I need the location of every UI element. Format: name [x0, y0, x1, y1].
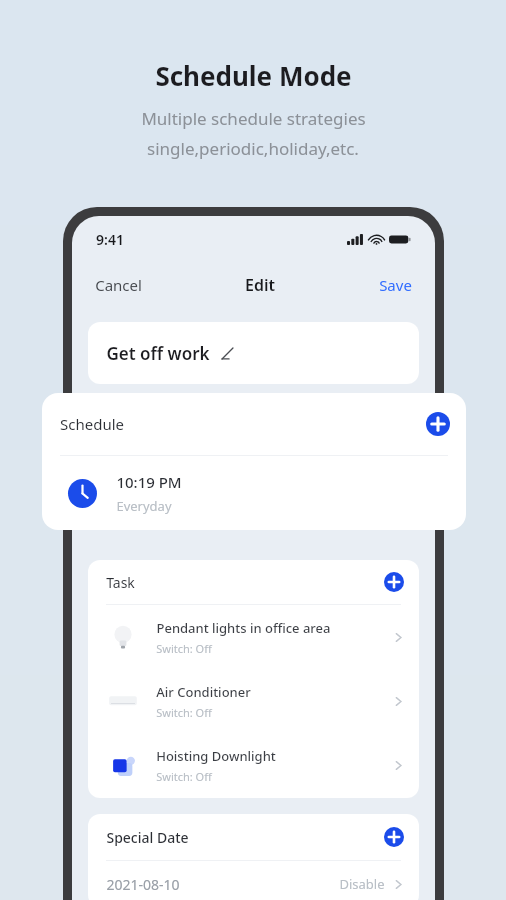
- button[interactable]: Get off work: [88, 322, 419, 384]
- staticText: Get off work: [106, 342, 210, 365]
- button[interactable]: Pendant lights in office area: [88, 605, 419, 669]
- staticText: Disable: [339, 875, 385, 893]
- staticText: 9:41: [96, 230, 124, 249]
- staticText: Multiple schedule strategies: [141, 107, 366, 130]
- staticText: Switch: Off: [156, 769, 212, 784]
- staticText: Hoisting Downlight: [156, 747, 276, 765]
- staticText: single,periodic,holiday,etc.: [147, 137, 359, 160]
- staticText: 2021-08-10: [106, 875, 180, 894]
- button[interactable]: Air Conditioner: [88, 669, 419, 733]
- staticText: Air Conditioner: [156, 683, 251, 701]
- staticText: Schedule: [60, 414, 124, 434]
- button[interactable]: Task: [88, 560, 419, 604]
- staticText: Schedule Mode: [155, 58, 352, 93]
- staticText: Edit: [245, 274, 275, 296]
- button[interactable]: Add: [384, 572, 404, 592]
- staticText: Pendant lights in office area: [156, 619, 331, 637]
- staticText: Save: [379, 275, 412, 295]
- staticText: Switch: Off: [156, 641, 212, 656]
- staticText: Special Date: [106, 828, 189, 847]
- button[interactable]: 2021-08-10: [88, 861, 419, 900]
- staticText: Task: [106, 573, 135, 592]
- button[interactable]: Add: [384, 827, 404, 847]
- staticText: Everyday: [116, 497, 172, 515]
- staticText: 10:19 PM: [116, 472, 182, 492]
- button[interactable]: Cancel: [91, 271, 146, 299]
- button[interactable]: Hoisting Downlight: [88, 733, 419, 797]
- button[interactable]: 10:19 PM: [42, 456, 466, 530]
- staticText: Switch: Off: [156, 705, 212, 720]
- button[interactable]: Add: [426, 412, 450, 436]
- button[interactable]: Special Date: [88, 814, 419, 860]
- button[interactable]: Schedule: [42, 393, 466, 455]
- staticText: Cancel: [95, 275, 142, 295]
- button[interactable]: Save: [375, 271, 416, 299]
